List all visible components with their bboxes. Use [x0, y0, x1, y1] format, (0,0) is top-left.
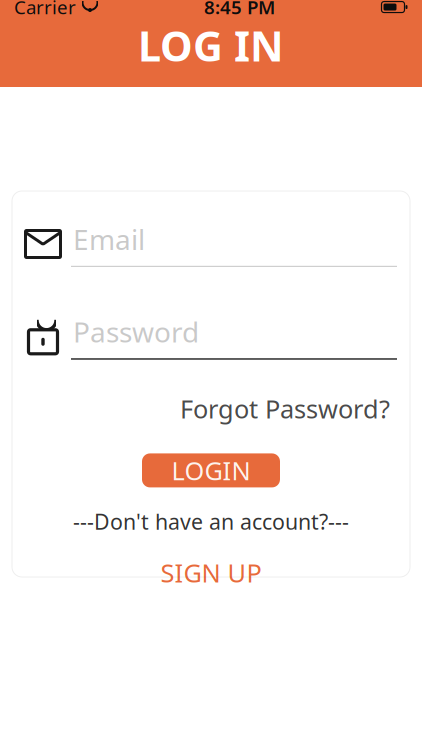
staticText: Forgot Password?	[180, 392, 390, 425]
staticText: 8:45 PM	[204, 0, 275, 19]
staticText: Email	[73, 221, 145, 258]
button[interactable]: SIGN UP	[154, 554, 267, 591]
staticText: LOGIN	[171, 454, 250, 487]
staticText: Carrier	[14, 0, 76, 19]
staticText: SIGN UP	[160, 556, 261, 589]
button[interactable]: LOGIN	[142, 453, 280, 487]
button[interactable]: Forgot Password?	[180, 390, 390, 427]
staticText: ---Don't have an account?---	[73, 507, 349, 536]
staticText: Password	[73, 313, 199, 350]
staticText: LOG IN	[138, 18, 284, 73]
